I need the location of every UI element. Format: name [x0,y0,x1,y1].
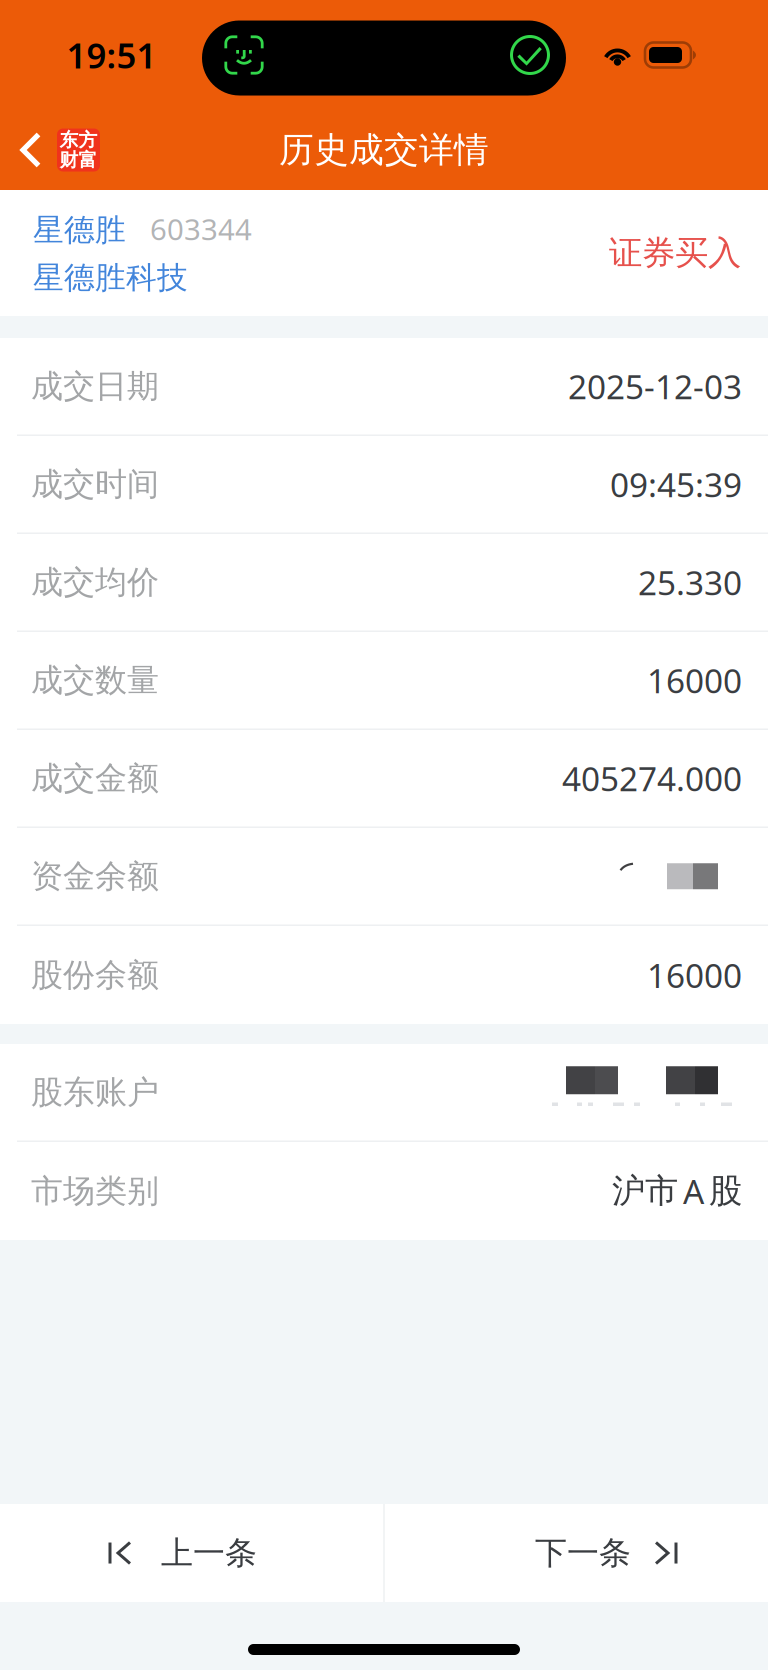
staticText: 证券买入 [609,232,741,273]
button[interactable]: 东方 [0,110,140,190]
staticText: 成交金额 [31,759,159,798]
staticText: 财富 [59,148,97,171]
staticText: A [683,1169,704,1213]
staticText: 成交均价 [31,563,159,602]
staticText: 25.330 [638,560,742,604]
staticText: 405274.000 [562,756,742,800]
staticText: 资金余额 [31,857,159,896]
staticText: 历史成交详情 [279,129,489,171]
staticText: 19:51 [66,32,156,78]
staticText: 成交时间 [31,465,159,504]
staticText: 股份余额 [31,955,159,995]
staticText: 星德胜科技 [33,259,188,297]
staticText: 603344 [150,209,252,248]
staticText: 东方 [59,129,97,151]
staticText: 股 [709,1170,742,1211]
staticText: 股东账户 [31,1073,159,1112]
staticText: 2025-12-03 [568,364,742,408]
staticText: 上一条 [161,1533,257,1573]
staticText: 16000 [647,658,742,702]
staticText: 16000 [647,953,742,997]
button[interactable]: 上一条 [0,1504,384,1602]
button[interactable]: 下一条 [384,1504,768,1602]
staticText: 下一条 [535,1533,631,1573]
staticText: 成交日期 [31,367,159,406]
staticText: 成交数量 [31,661,159,700]
staticText: 星德胜 [33,211,126,249]
staticText: 市场类别 [31,1171,159,1211]
staticText: 09:45:39 [610,462,742,506]
staticText: 沪市 [612,1170,678,1211]
